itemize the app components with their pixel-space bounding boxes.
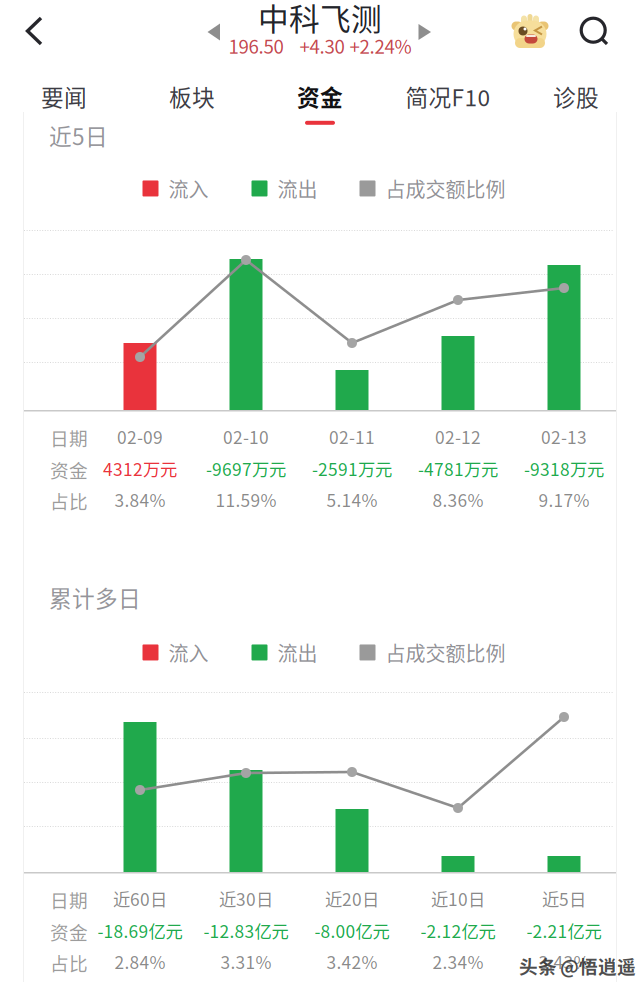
staticText: @悟逍遥 xyxy=(560,952,636,979)
staticText: 日期 xyxy=(50,424,88,451)
staticText: 2.84% xyxy=(114,949,165,974)
staticText: 占成交额比例 xyxy=(385,174,505,203)
button[interactable]: Search xyxy=(569,6,619,56)
staticText: 近30日 xyxy=(219,886,273,911)
staticText: 板块 xyxy=(169,80,215,113)
staticText: 02-10 xyxy=(223,424,269,449)
staticText: 11.59% xyxy=(215,487,276,512)
staticText: -2.21亿元 xyxy=(526,918,601,943)
staticText: 占比 xyxy=(50,949,88,976)
staticText: 02-09 xyxy=(117,424,163,449)
staticText: 近5日 xyxy=(542,886,586,911)
staticText: 近20日 xyxy=(325,886,379,911)
staticText: 流出 xyxy=(277,174,317,203)
staticText: -2591万元 xyxy=(312,456,392,481)
staticText: 3.42% xyxy=(326,949,377,974)
staticText: 头条 xyxy=(519,952,557,979)
staticText: 近5日 xyxy=(49,119,108,152)
button[interactable]: Back xyxy=(9,6,59,56)
staticText: 占比 xyxy=(50,487,88,514)
staticText: +2.24% xyxy=(349,32,411,59)
staticText: 近10日 xyxy=(431,886,485,911)
staticText: -2.12亿元 xyxy=(420,918,495,943)
button[interactable]: 简况F10 xyxy=(384,80,512,128)
button[interactable]: Previous stock xyxy=(197,15,231,49)
staticText: -8.00亿元 xyxy=(314,918,389,943)
staticText: 资金 xyxy=(50,918,88,945)
staticText: 资金 xyxy=(297,80,343,113)
staticText: 流出 xyxy=(277,638,317,667)
staticText: 日期 xyxy=(50,886,88,913)
staticText: 8.36% xyxy=(432,487,483,512)
staticText: 累计多日 xyxy=(49,581,141,614)
staticText: -18.69亿元 xyxy=(97,918,182,943)
staticText: +4.30 xyxy=(299,32,344,59)
staticText: 流入 xyxy=(168,638,208,667)
button[interactable]: 资金 xyxy=(256,80,384,128)
staticText: 02-13 xyxy=(541,424,587,449)
staticText: 02-11 xyxy=(329,424,375,449)
button[interactable]: 板块 xyxy=(128,80,256,128)
staticText: 3.31% xyxy=(220,949,271,974)
staticText: 3.43% xyxy=(538,949,589,974)
staticText: 近60日 xyxy=(113,886,167,911)
staticText: -4781万元 xyxy=(418,456,498,481)
staticText: 诊股 xyxy=(553,80,599,113)
staticText: 9.17% xyxy=(538,487,589,512)
staticText: 要闻 xyxy=(41,80,87,113)
staticText: 占成交额比例 xyxy=(385,638,505,667)
staticText: 02-12 xyxy=(435,424,481,449)
staticText: -12.83亿元 xyxy=(203,918,288,943)
button[interactable]: Profile xyxy=(504,6,556,56)
staticText: 流入 xyxy=(168,174,208,203)
button[interactable]: 要闻 xyxy=(0,80,128,128)
staticText: 196.50 xyxy=(228,32,283,59)
staticText: 2.34% xyxy=(432,949,483,974)
staticText: -9318万元 xyxy=(524,456,604,481)
staticText: 4312万元 xyxy=(103,456,177,481)
staticText: 3.84% xyxy=(114,487,165,512)
button[interactable]: 诊股 xyxy=(512,80,640,128)
staticText: 资金 xyxy=(50,456,88,483)
staticText: 5.14% xyxy=(326,487,377,512)
staticText: 中科飞测 xyxy=(258,0,382,39)
staticText: -9697万元 xyxy=(206,456,286,481)
staticText: 简况F10 xyxy=(405,80,490,113)
button[interactable]: Next stock xyxy=(408,15,442,49)
